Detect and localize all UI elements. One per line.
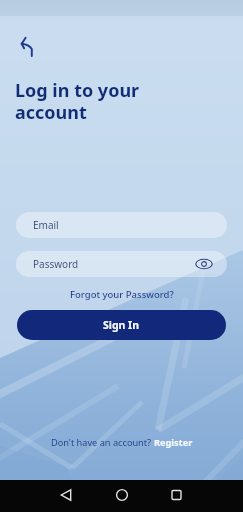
button[interactable] — [50, 480, 82, 512]
button[interactable] — [106, 480, 138, 512]
button[interactable] — [8, 26, 50, 68]
button[interactable]: Forgot your Password? — [70, 288, 174, 301]
button[interactable]: Password — [16, 251, 227, 277]
button[interactable]: Register — [154, 436, 193, 449]
button[interactable]: Sign In — [17, 310, 226, 340]
staticText: Email — [33, 218, 59, 232]
button[interactable] — [160, 480, 192, 512]
button[interactable]: Email — [16, 212, 227, 238]
staticText: Log in to your account — [15, 78, 140, 125]
staticText: Don't have an account? — [51, 436, 154, 449]
staticText: Sign In — [103, 318, 140, 332]
staticText: Password — [33, 257, 79, 271]
